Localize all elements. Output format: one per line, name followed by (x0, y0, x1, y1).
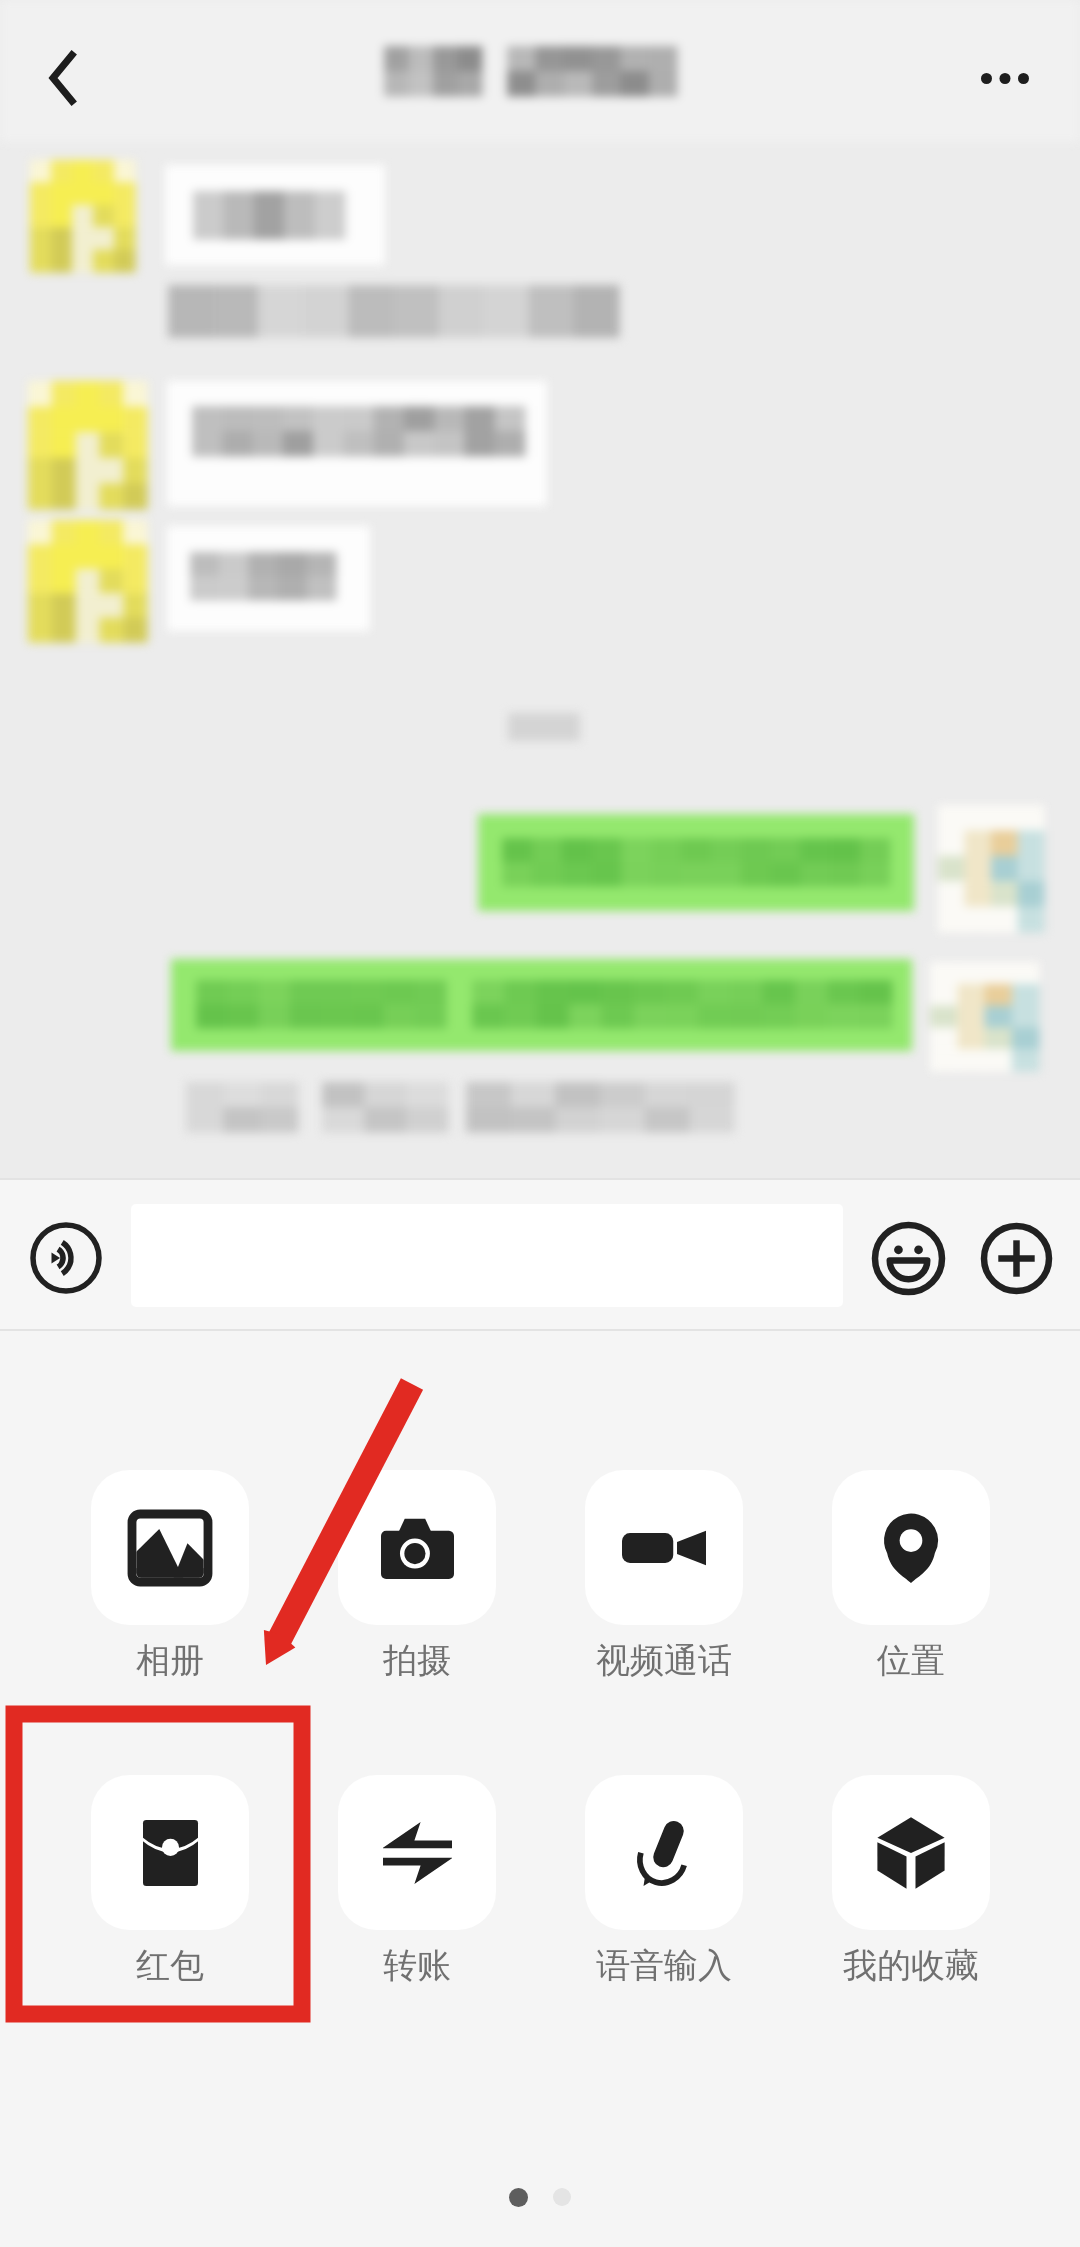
button[interactable]: 语音输入 (540, 1775, 787, 1990)
staticText: 视频通话 (596, 1639, 732, 1682)
staticText: 语音输入 (596, 1944, 732, 1987)
button[interactable]: Emoji (864, 1214, 952, 1302)
button[interactable]: 我的收藏 (787, 1775, 1034, 1990)
button[interactable]: 相册 (46, 1470, 293, 1685)
button[interactable]: Voice message (22, 1214, 110, 1302)
staticText: 位置 (877, 1639, 945, 1682)
staticText: 转账 (383, 1944, 451, 1987)
button[interactable]: 转账 (293, 1775, 540, 1990)
staticText: 我的收藏 (843, 1944, 979, 1987)
button[interactable]: More options (950, 30, 1060, 126)
button[interactable]: 位置 (787, 1470, 1034, 1685)
button[interactable]: More attachments (972, 1214, 1060, 1302)
button[interactable]: 拍摄 (293, 1470, 540, 1685)
staticText: 拍摄 (383, 1639, 451, 1682)
button[interactable]: 视频通话 (540, 1470, 787, 1685)
button[interactable]: Page 2 (553, 2188, 571, 2206)
staticText: 红包 (136, 1944, 204, 1987)
button[interactable]: Back (14, 30, 110, 126)
staticText: 相册 (136, 1639, 204, 1682)
button[interactable]: Page 1 (509, 2188, 528, 2207)
button[interactable]: 红包 (46, 1775, 293, 1990)
